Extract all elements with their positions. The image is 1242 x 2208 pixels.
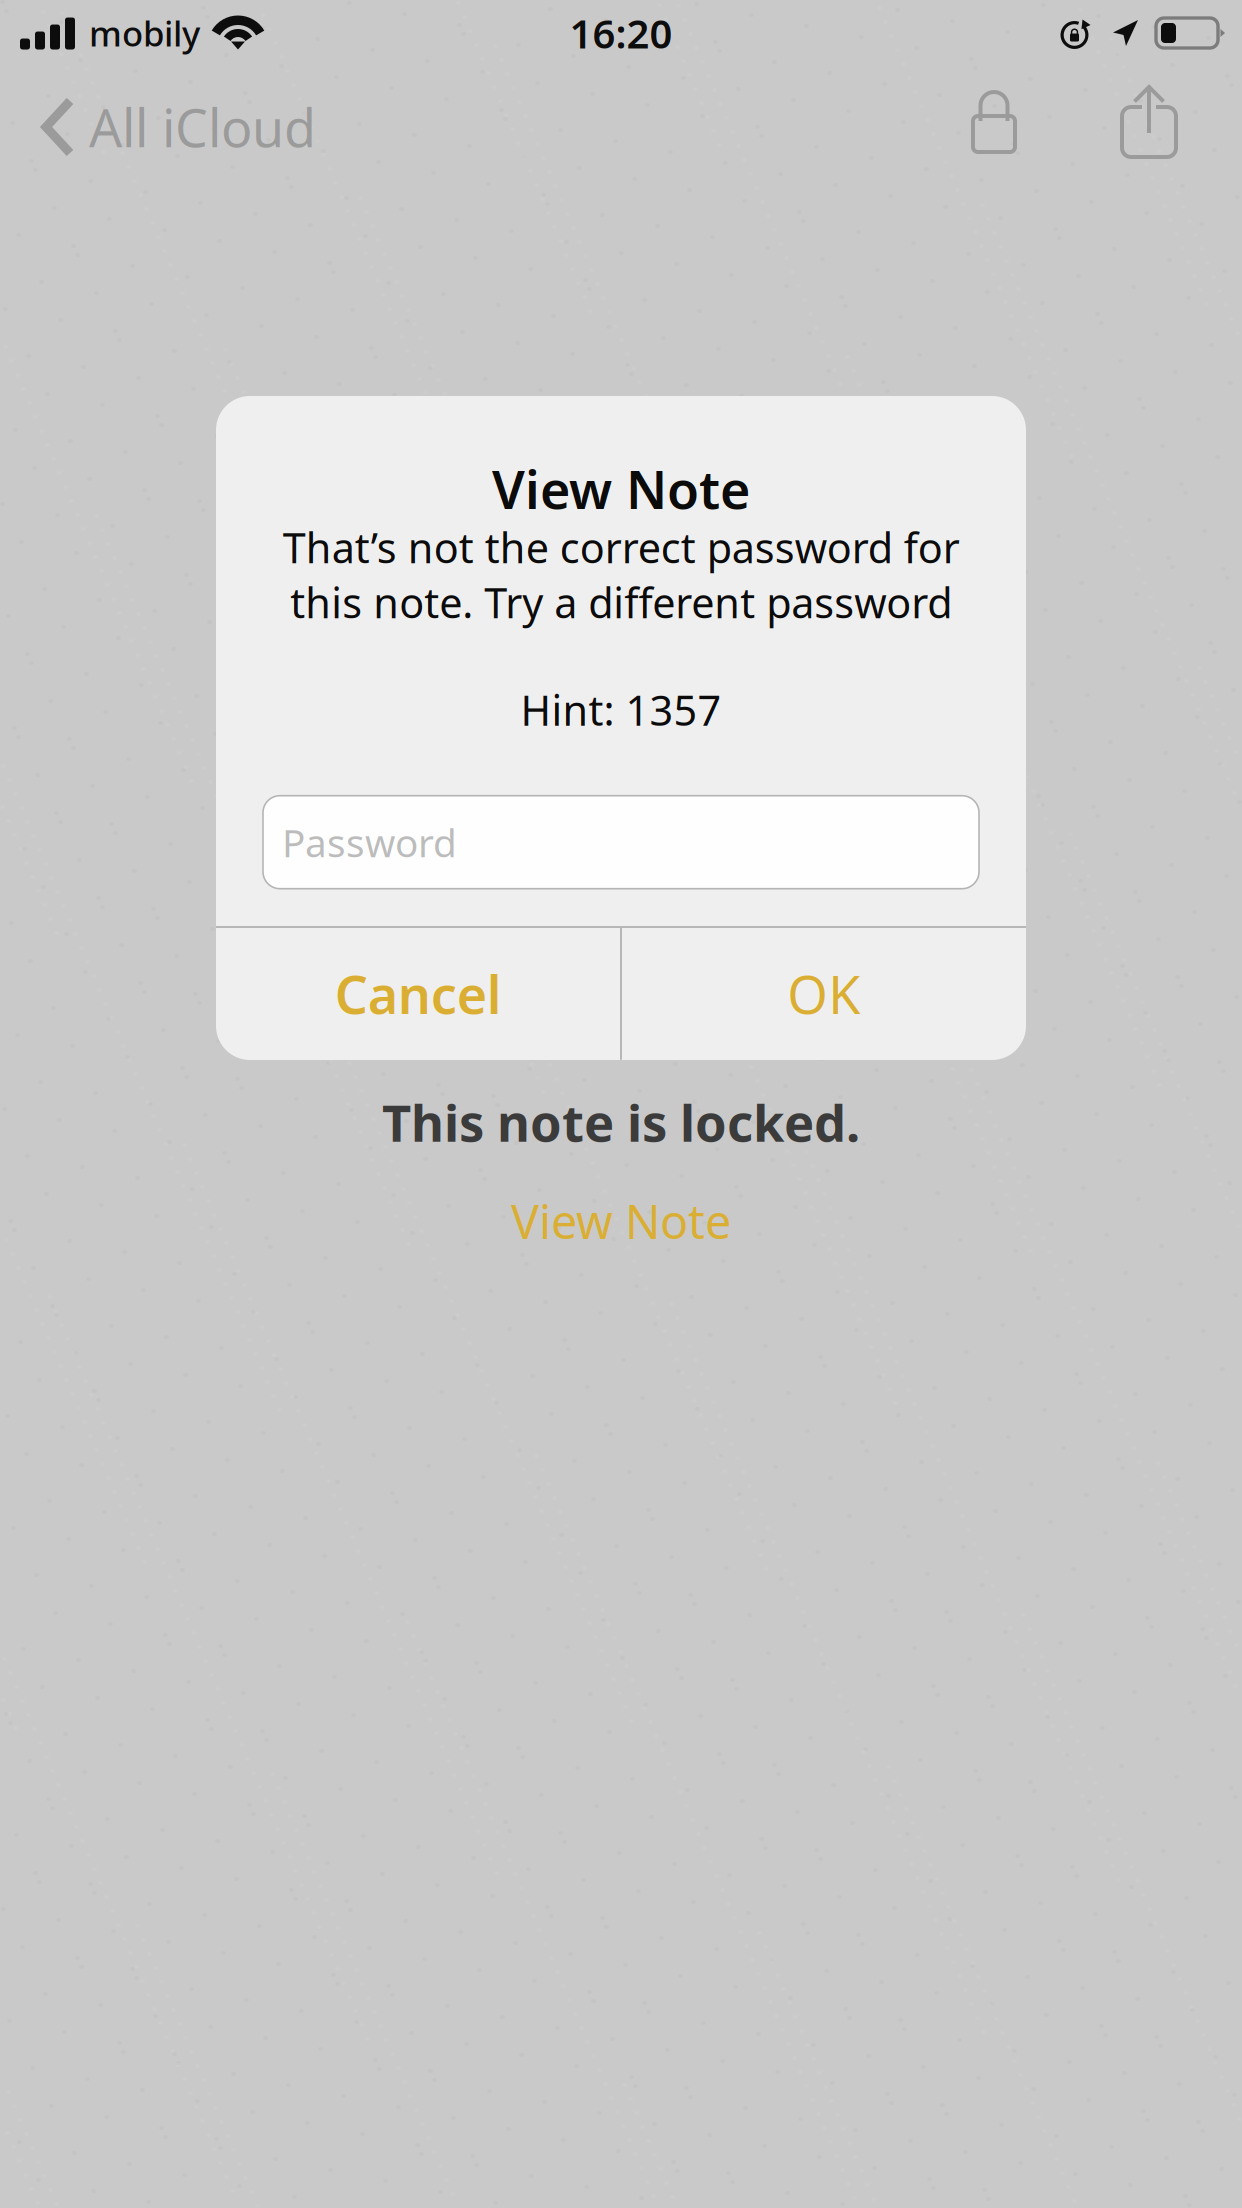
staticText: 16:20 [569,6,672,59]
button[interactable]: Cancel [216,928,620,1060]
staticText: This note is locked. [382,1088,860,1156]
staticText: View Note [492,454,750,523]
staticText: That’s not the correct password for this… [282,520,959,630]
button[interactable]: Share [1088,67,1242,175]
staticText: View Note [511,1190,731,1252]
button[interactable]: All iCloud [0,70,336,172]
staticText: All iCloud [89,92,316,162]
staticText: OK [787,959,860,1028]
button[interactable]: Lock note [939,68,1088,174]
staticText: Password [282,816,457,868]
staticText: mobily [89,10,200,56]
button[interactable]: OK [622,928,1026,1060]
staticText: Cancel [335,959,502,1028]
staticText: Hint: 1357 [520,682,721,737]
button[interactable]: View Note [481,1195,761,1247]
